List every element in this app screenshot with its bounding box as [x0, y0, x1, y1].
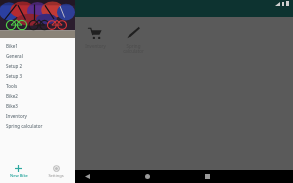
button[interactable]: Setup 2 — [0, 61, 75, 71]
staticText: Bike2 — [6, 93, 18, 99]
button[interactable]: Recents — [177, 170, 237, 183]
staticText: Bike3 — [6, 103, 18, 109]
button[interactable]: Bike3 — [0, 101, 75, 111]
button[interactable]: Setup 3 — [0, 71, 75, 81]
button[interactable]: Inventory — [0, 111, 75, 121]
button[interactable]: Spring calculator — [118, 23, 148, 57]
button[interactable]: Back — [57, 170, 117, 183]
staticText: Bike1 — [6, 43, 18, 49]
staticText: Setup 2 — [6, 63, 23, 69]
button[interactable]: Inventory — [80, 23, 110, 51]
staticText: New Bike — [10, 173, 28, 178]
staticText: Inventory — [6, 113, 27, 119]
staticText: Spring calculator — [6, 123, 43, 129]
button[interactable]: New Bike — [0, 159, 37, 183]
button[interactable]: Bike1 — [0, 41, 75, 51]
button[interactable]: General — [0, 51, 75, 61]
button[interactable]: Bike2 — [0, 91, 75, 101]
staticText: Settings — [48, 173, 64, 178]
staticText: Tools — [6, 83, 18, 89]
button[interactable]: Settings — [37, 159, 75, 183]
staticText: General — [6, 53, 23, 59]
button[interactable]: Home — [117, 170, 177, 183]
button[interactable]: Tools — [0, 81, 75, 91]
staticText: Setup 3 — [6, 73, 23, 79]
button[interactable]: Spring calculator — [0, 121, 75, 131]
